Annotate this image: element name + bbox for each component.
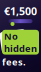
staticText: fees. [2,56,26,68]
staticText: €1,500 [4,4,37,18]
staticText: No hidden [4,30,37,55]
